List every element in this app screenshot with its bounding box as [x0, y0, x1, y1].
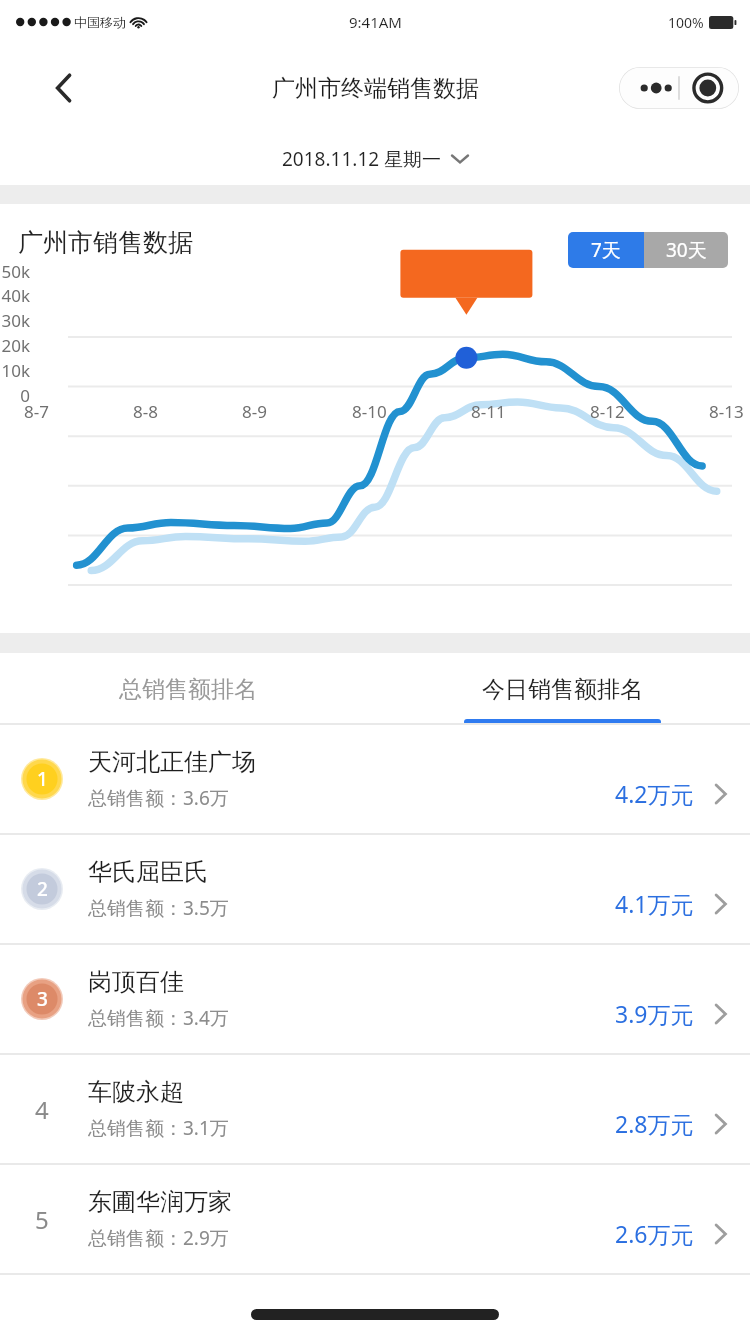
staticText: 2 [37, 876, 48, 902]
staticText: 9:41AM [349, 12, 402, 32]
button[interactable]: 30天 [644, 232, 728, 268]
staticText: 8-9 [242, 400, 267, 423]
staticText: 50k [0, 260, 30, 283]
button[interactable]: 总销售额排名 [0, 653, 375, 725]
staticText: 总销售额排名 [119, 675, 257, 704]
staticText: 7天 [591, 237, 621, 263]
staticText: 总销售额：3.5万 [88, 895, 229, 921]
staticText: 30天 [666, 237, 707, 263]
staticText: 中国移动 [74, 14, 126, 30]
button[interactable]: 5 [0, 1165, 750, 1273]
staticText: 8-7 [24, 400, 49, 423]
staticText: 8-10 [352, 400, 387, 423]
staticText: 40k [0, 284, 30, 307]
staticText: 2.6万元 [615, 1218, 694, 1249]
staticText: 0 [0, 384, 30, 407]
staticText: 岗顶百佳 [88, 967, 184, 997]
staticText: 30k [0, 309, 30, 332]
staticText: 8-13 [709, 400, 744, 423]
staticText: 3 [37, 986, 48, 1012]
staticText: 8-12 [590, 400, 625, 423]
staticText: 1 [37, 766, 48, 792]
button[interactable]: 4 [0, 1055, 750, 1163]
staticText: 天河北正佳广场 [88, 747, 256, 777]
button[interactable]: Menu and Close [619, 67, 739, 109]
staticText: 4 [35, 1093, 49, 1126]
staticText: 8-11 [471, 400, 506, 423]
staticText: 4.2万元 [615, 778, 694, 809]
staticText: 2018.11.12 星期一 [282, 146, 442, 172]
staticText: 广州市销售数据 [18, 227, 193, 258]
staticText: 东圃华润万家 [88, 1187, 232, 1217]
staticText: 4.1万元 [615, 888, 694, 919]
staticText: 100% [668, 13, 704, 32]
button[interactable]: 2 [0, 835, 750, 943]
button[interactable]: 2018.11.12 星期一 [0, 132, 750, 185]
staticText: 2.8万元 [615, 1108, 694, 1139]
button[interactable]: Back [40, 64, 88, 112]
button[interactable]: 3 [0, 945, 750, 1053]
staticText: 5 [35, 1203, 49, 1236]
staticText: 广州市终端销售数据 [272, 74, 479, 103]
staticText: 10k [0, 359, 30, 382]
staticText: 总销售额：3.6万 [88, 785, 229, 811]
staticText: 车陂永超 [88, 1077, 184, 1107]
button[interactable]: 7天 [568, 232, 644, 268]
button[interactable]: 1 [0, 725, 750, 833]
button[interactable]: 今日销售额排名 [375, 653, 750, 725]
staticText: 总销售额：2.9万 [88, 1225, 229, 1251]
staticText: 总销售额：3.4万 [88, 1005, 229, 1031]
staticText: 今日销售额排名 [482, 675, 643, 704]
staticText: 8-8 [133, 400, 158, 423]
staticText: 华氏屈臣氏 [88, 857, 208, 887]
staticText: 20k [0, 334, 30, 357]
staticText: 总销售额：3.1万 [88, 1115, 229, 1141]
staticText: 3.9万元 [615, 998, 694, 1029]
